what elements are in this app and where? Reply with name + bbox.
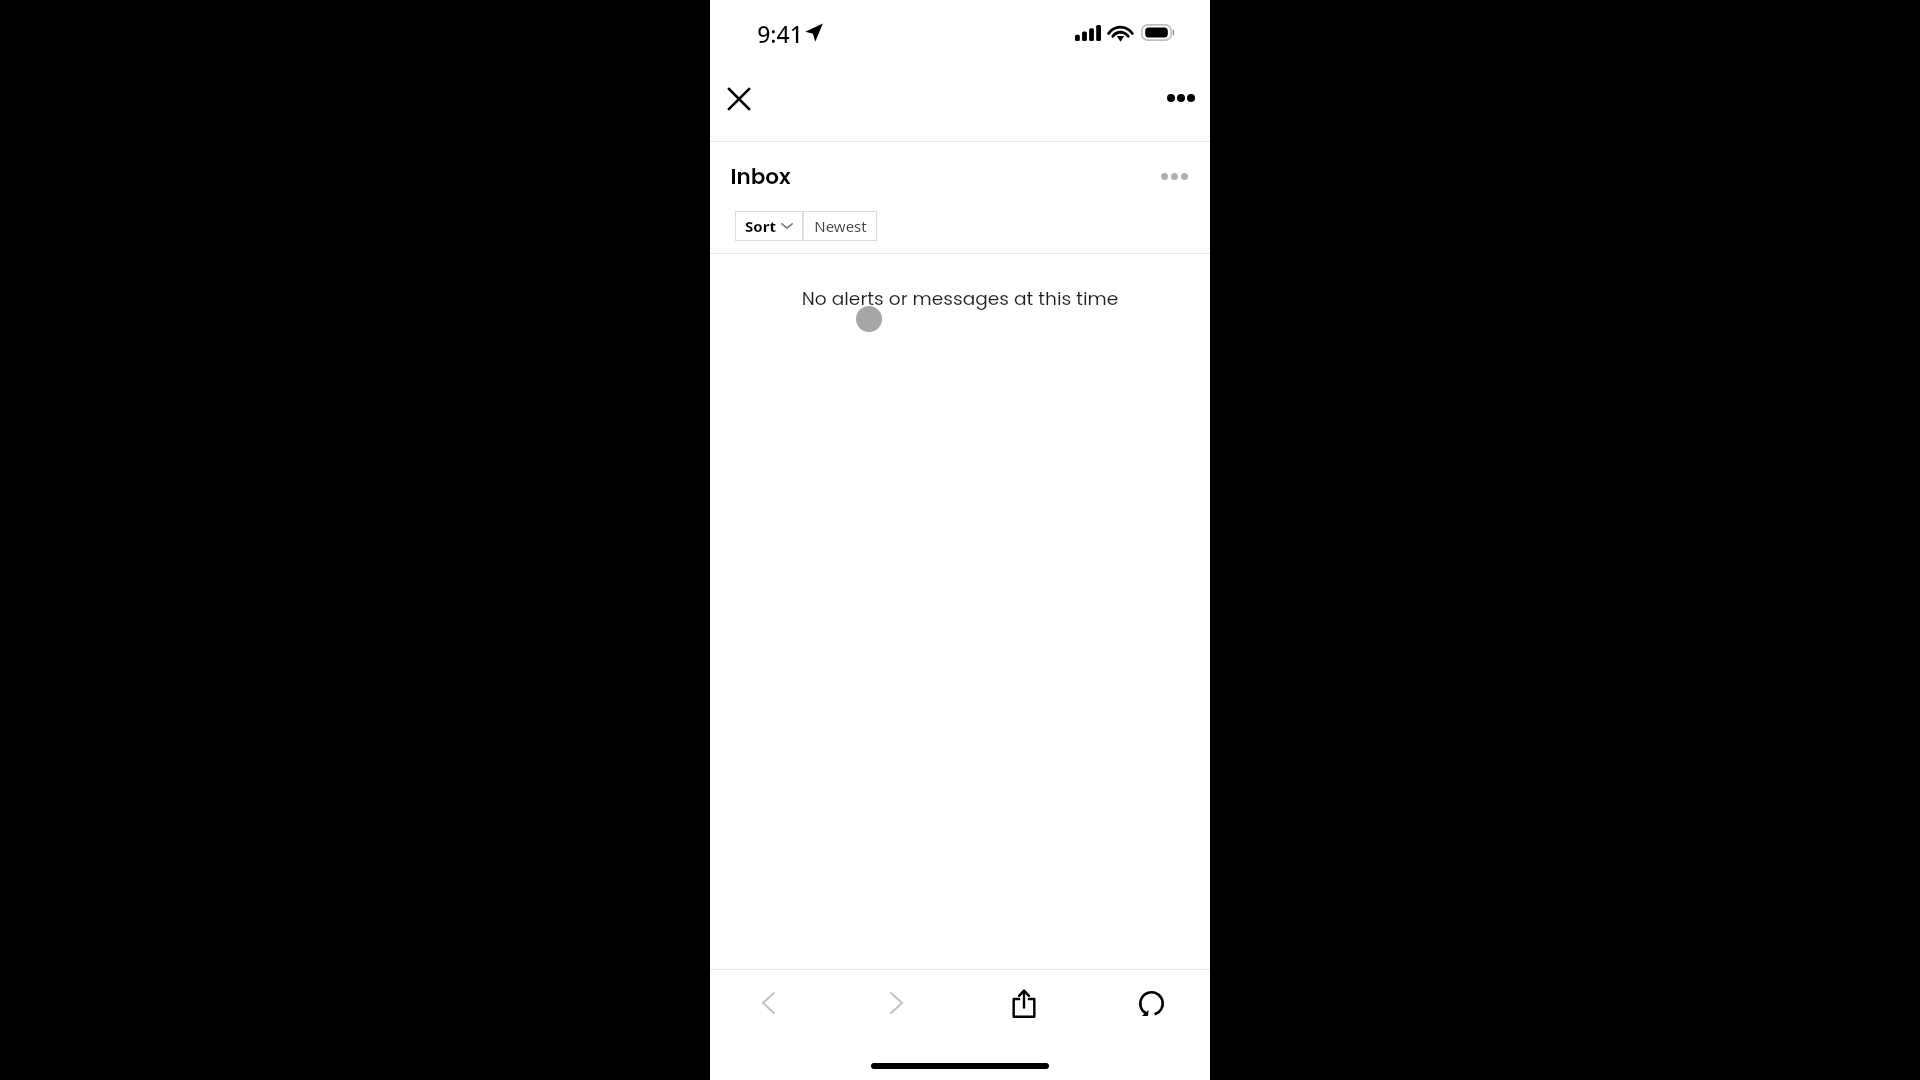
staticText: 9:41: [757, 18, 803, 49]
button[interactable]: Close: [716, 76, 762, 122]
staticText: Sort: [745, 216, 776, 236]
button[interactable]: Sort: [735, 211, 803, 241]
button[interactable]: Forward: [868, 975, 924, 1031]
button[interactable]: Inbox options: [1152, 154, 1196, 198]
button[interactable]: Share: [996, 975, 1052, 1031]
button[interactable]: Reload: [1123, 975, 1179, 1031]
button[interactable]: More options: [1158, 75, 1204, 121]
staticText: No alerts or messages at this time: [710, 285, 1210, 311]
staticText: Inbox: [730, 161, 791, 191]
button[interactable]: Back: [740, 975, 796, 1031]
staticText: Newest: [814, 216, 867, 236]
button[interactable]: Newest: [803, 211, 877, 241]
